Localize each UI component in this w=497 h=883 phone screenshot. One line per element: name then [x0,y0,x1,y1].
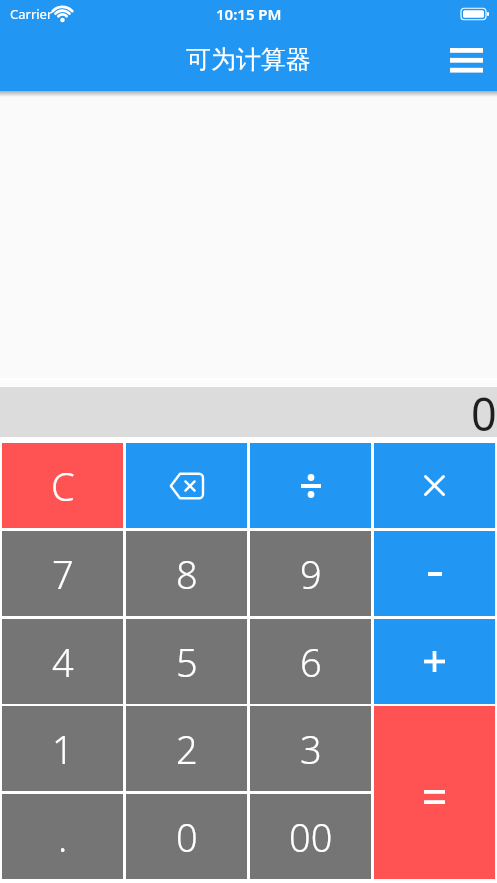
button[interactable]: 8 [126,531,247,616]
button[interactable]: 7 [2,531,123,616]
button[interactable]: 6 [250,619,371,704]
button[interactable]: 3 [250,706,371,791]
staticText: 00 [289,811,333,863]
staticText: 8 [176,548,198,600]
staticText: 3 [300,723,322,775]
staticText: 0 [471,383,497,433]
button[interactable]: 4 [2,619,123,704]
staticText: 4 [52,636,74,688]
button[interactable]: 1 [2,706,123,791]
button[interactable]: . [2,794,123,879]
button[interactable] [442,36,490,84]
button[interactable]: 0 [126,794,247,879]
staticText: C [51,460,75,512]
button[interactable]: 2 [126,706,247,791]
staticText: 9 [300,548,322,600]
button[interactable]: 5 [126,619,247,704]
staticText: 0 [176,811,198,863]
staticText: 可为计算器 [186,44,311,75]
staticText: 1 [52,723,74,775]
staticText: Carrier [10,5,53,23]
staticText: 6 [300,636,322,688]
button[interactable] [374,619,495,704]
staticText: 7 [52,548,74,600]
button[interactable] [374,531,495,616]
staticText: 10:15 PM [216,4,282,24]
staticText: 5 [176,636,198,688]
button[interactable]: C [2,443,123,528]
button[interactable]: 9 [250,531,371,616]
staticText: . [58,811,68,863]
button[interactable] [126,443,247,528]
button[interactable] [250,443,371,528]
button[interactable] [374,706,495,879]
button[interactable] [374,443,495,528]
button[interactable]: 00 [250,794,371,879]
staticText: 2 [176,723,198,775]
